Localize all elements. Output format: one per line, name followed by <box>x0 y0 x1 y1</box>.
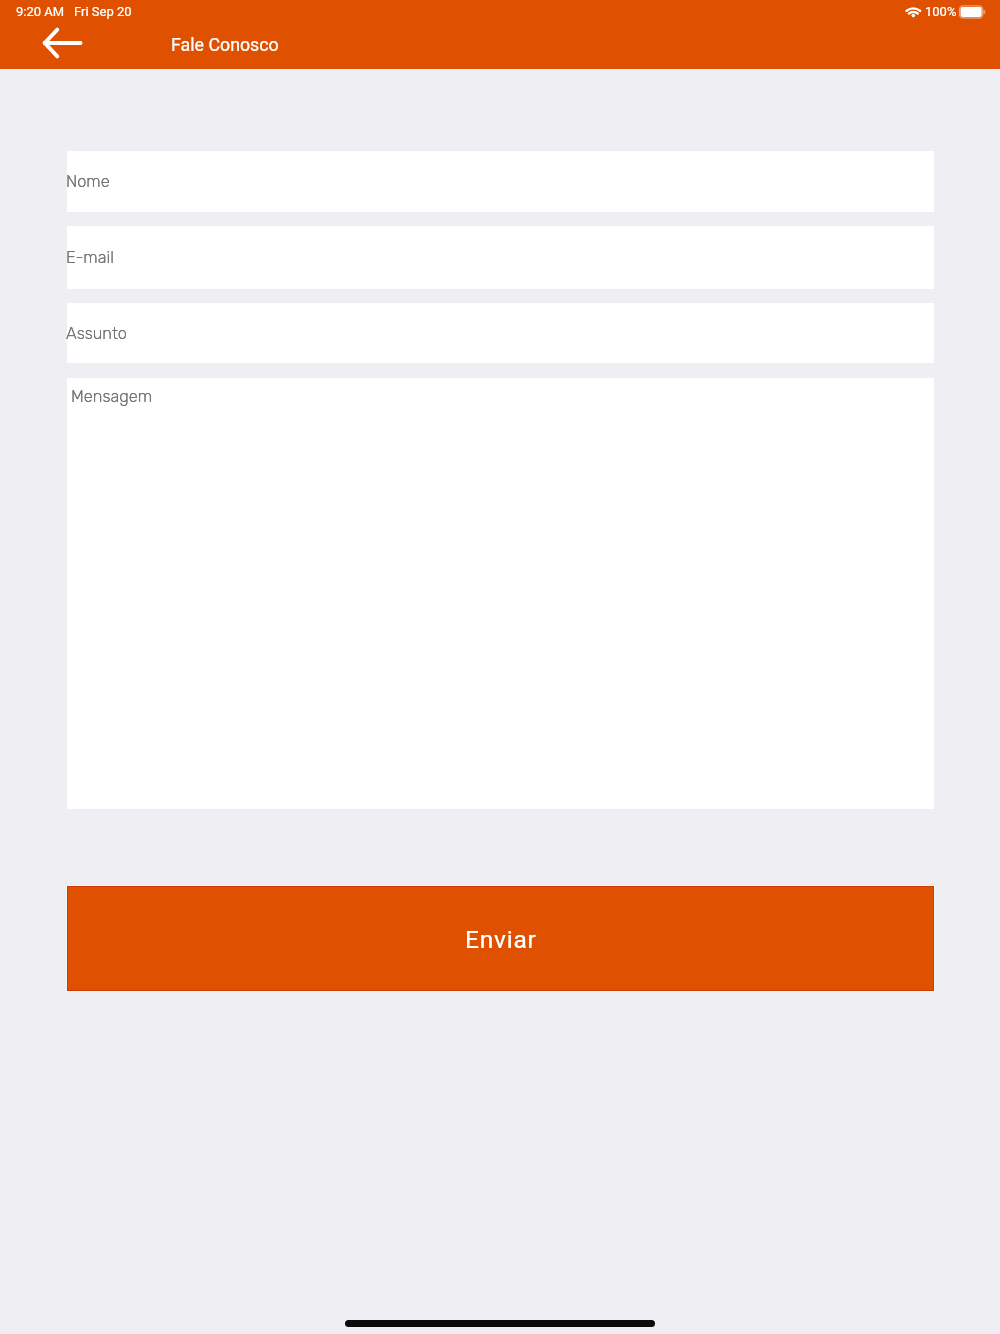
staticText: 100% <box>925 4 957 19</box>
staticText: Fri Sep 20 <box>74 4 132 19</box>
staticText: Fale Conosco <box>171 34 279 55</box>
staticText: Mensagem <box>71 387 153 406</box>
button[interactable]: Nome <box>67 151 934 212</box>
button[interactable]: Assunto <box>67 303 934 363</box>
staticText: Assunto <box>66 324 127 343</box>
staticText: Assunto <box>66 324 127 343</box>
staticText: E-mail <box>66 248 114 267</box>
button[interactable]: E-mail <box>67 226 934 289</box>
staticText: Mensagem <box>71 387 153 406</box>
button[interactable]: Enviar <box>67 886 934 991</box>
staticText: 9:20 AM <box>16 4 65 19</box>
staticText: Enviar <box>465 925 537 954</box>
staticText: Nome <box>66 172 110 191</box>
staticText: Nome <box>66 172 110 191</box>
staticText: E-mail <box>66 248 114 267</box>
button[interactable]: Mensagem <box>67 378 934 809</box>
button[interactable]: Voltar <box>31 21 95 65</box>
